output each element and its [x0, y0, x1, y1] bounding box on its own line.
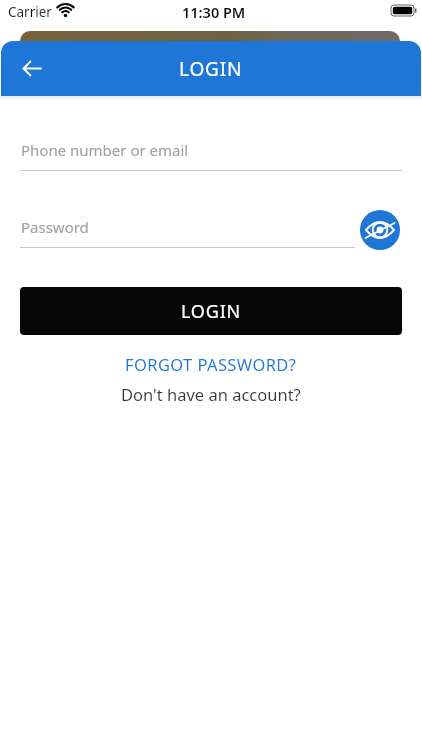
button[interactable]: Phone number or email: [20, 138, 402, 171]
button[interactable]: Password: [20, 215, 355, 248]
button[interactable]: [13, 41, 51, 96]
button[interactable]: FORGOT PASSWORD?: [125, 353, 297, 375]
button[interactable]: Don't have an account?: [121, 383, 301, 405]
staticText: Password: [21, 217, 89, 237]
button[interactable]: LOGIN: [20, 287, 402, 335]
button[interactable]: [360, 210, 400, 250]
staticText: LOGIN: [181, 299, 242, 324]
staticText: Phone number or email: [21, 140, 189, 160]
staticText: Carrier: [8, 3, 52, 21]
staticText: LOGIN: [179, 56, 243, 82]
staticText: 11:30 PM: [182, 2, 246, 22]
